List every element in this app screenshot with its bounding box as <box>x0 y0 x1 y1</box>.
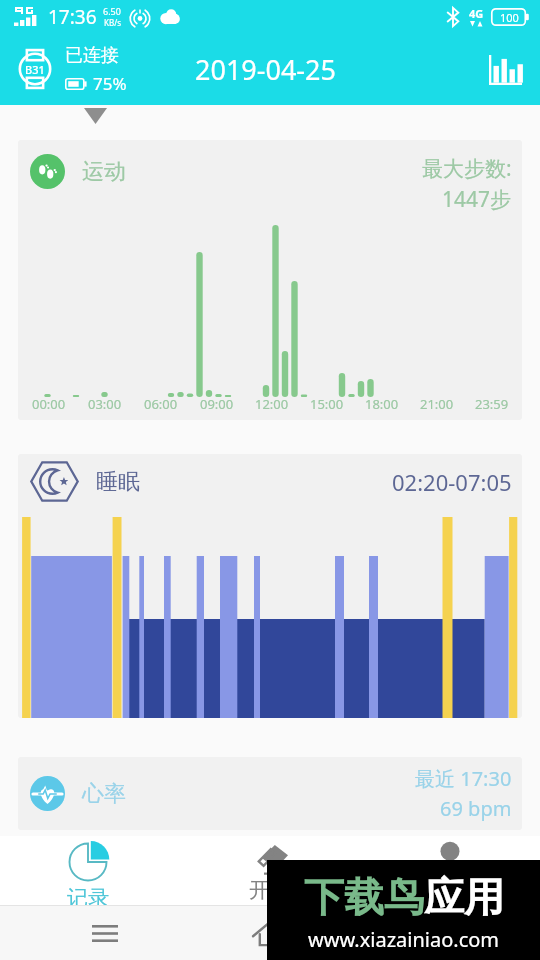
button[interactable]: 运动 <box>18 140 522 420</box>
button[interactable]: 心率 <box>18 757 522 830</box>
staticText: 开始 <box>249 877 291 903</box>
staticText: 运动 <box>82 158 126 186</box>
button[interactable]: 我的 <box>370 836 530 903</box>
staticText: 23:59 <box>475 395 509 413</box>
staticText: 15:00 <box>310 395 344 413</box>
button[interactable]: Statistics <box>483 47 527 91</box>
staticText: www.xiazainiao.com <box>308 926 500 953</box>
staticText: 心率 <box>82 780 126 808</box>
staticText: 记录 <box>67 885 109 905</box>
button[interactable]: Recents <box>60 906 150 960</box>
staticText: 75% <box>93 72 127 95</box>
staticText: 00:00 <box>32 395 66 413</box>
button[interactable]: B31 <box>13 33 540 105</box>
staticText: 09:00 <box>200 395 234 413</box>
button[interactable]: Back <box>390 906 480 960</box>
staticText: 100 <box>500 10 519 25</box>
staticText: 下载鸟 <box>304 872 424 922</box>
staticText: 1447步 <box>442 185 512 214</box>
staticText: 12:00 <box>255 395 289 413</box>
staticText: KB/s <box>104 17 121 28</box>
staticText: 2019-04-25 <box>195 51 336 88</box>
staticText: 02:20-07:05 <box>392 467 512 497</box>
staticText: 06:00 <box>144 395 178 413</box>
staticText: 最大步数: <box>422 154 512 183</box>
staticText: B31 <box>25 62 45 77</box>
staticText: 17:36 <box>48 4 97 30</box>
staticText: 已连接 <box>65 44 119 67</box>
staticText: 03:00 <box>88 395 122 413</box>
staticText: 69 bpm <box>440 795 512 822</box>
button[interactable]: 开始 <box>190 836 350 903</box>
staticText: 应用 <box>424 872 504 922</box>
staticText: 最近 17:30 <box>415 765 512 792</box>
staticText: 我的 <box>429 877 471 903</box>
staticText: 6.50 <box>103 5 121 17</box>
button[interactable]: 睡眠 <box>18 454 522 718</box>
staticText: 18:00 <box>365 395 399 413</box>
button[interactable]: 记录 <box>8 836 168 905</box>
staticText: 21:00 <box>420 395 454 413</box>
staticText: 4G <box>469 6 484 21</box>
button[interactable]: Home <box>225 906 315 960</box>
staticText: 睡眠 <box>96 468 140 496</box>
